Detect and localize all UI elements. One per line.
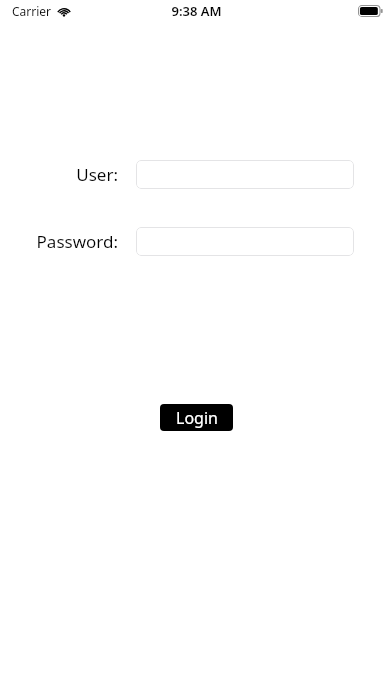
button[interactable] — [136, 160, 354, 189]
staticText: 9:38 AM — [171, 2, 222, 20]
staticText: Login — [176, 407, 218, 429]
button[interactable] — [136, 227, 354, 256]
button[interactable]: Login — [160, 404, 233, 431]
staticText: Carrier — [12, 3, 52, 19]
staticText: User: — [76, 163, 118, 186]
staticText: Password: — [36, 230, 118, 253]
